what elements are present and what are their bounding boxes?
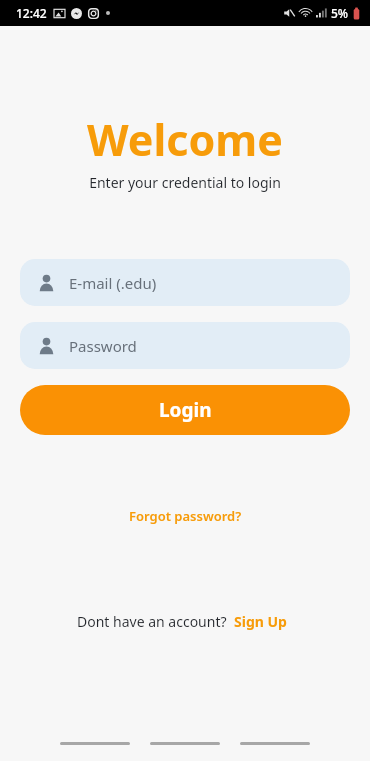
staticText: Login [159, 397, 212, 423]
staticText: Enter your credential to login [0, 173, 370, 192]
staticText: Welcome [0, 110, 370, 169]
button[interactable]: E-mail (.edu) [20, 259, 350, 306]
button[interactable]: Home [150, 731, 220, 755]
staticText: 5% [331, 5, 349, 21]
button[interactable]: Recents [60, 731, 130, 755]
button[interactable]: Sign Up [227, 609, 294, 634]
staticText: E-mail (.edu) [69, 273, 157, 293]
staticText: Dont have an account? [77, 612, 227, 631]
button[interactable]: Forgot password? [121, 503, 250, 529]
button[interactable]: Login [20, 385, 350, 435]
staticText: Sign Up [234, 612, 287, 631]
staticText: Password [69, 336, 137, 356]
staticText: Forgot password? [129, 507, 242, 525]
button[interactable]: Password [20, 322, 350, 369]
staticText: 12:42 [16, 5, 47, 21]
button[interactable]: Back [240, 731, 310, 755]
